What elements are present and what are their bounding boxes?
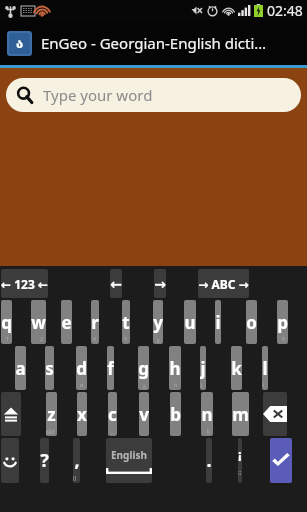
staticText: n bbox=[201, 403, 213, 426]
button[interactable]: n bbox=[201, 392, 213, 436]
button[interactable]: k bbox=[231, 346, 242, 390]
staticText: 4 bbox=[93, 336, 96, 343]
button[interactable]: g bbox=[138, 346, 149, 390]
staticText: f bbox=[107, 357, 114, 380]
button[interactable]: l bbox=[262, 346, 268, 390]
staticText: EnGeo - Georgian-English dicti… bbox=[41, 33, 267, 53]
staticText: j bbox=[200, 357, 206, 380]
button[interactable]: s bbox=[45, 346, 54, 390]
staticText: → ABC → bbox=[198, 276, 249, 292]
button[interactable]: , bbox=[73, 438, 80, 483]
button[interactable]: v bbox=[139, 392, 149, 436]
button[interactable]: q bbox=[1, 300, 12, 344]
button[interactable]: Backspace bbox=[263, 392, 287, 436]
button[interactable]: p bbox=[277, 300, 288, 344]
button[interactable]: Symbols bbox=[238, 438, 242, 483]
button[interactable]: ? bbox=[40, 438, 49, 483]
staticText: ← bbox=[110, 276, 122, 292]
button[interactable]: b bbox=[170, 392, 181, 436]
staticText: ⁝⁝ bbox=[238, 469, 242, 477]
staticText: 02:48 bbox=[267, 1, 303, 20]
staticText: 5 bbox=[124, 336, 127, 343]
staticText: ← 123 ← bbox=[1, 276, 48, 292]
staticText: ჟჰძ bbox=[46, 429, 54, 435]
button[interactable]: m bbox=[232, 392, 249, 436]
staticText: d bbox=[76, 357, 87, 380]
staticText: o bbox=[246, 311, 257, 334]
button[interactable]: e bbox=[61, 300, 72, 344]
staticText: l bbox=[262, 357, 268, 380]
staticText: 1 bbox=[6, 336, 9, 343]
staticText: h bbox=[169, 357, 181, 380]
staticText: → bbox=[154, 276, 166, 292]
button[interactable]: f bbox=[107, 346, 114, 390]
staticText: r bbox=[91, 311, 99, 334]
staticText: j bbox=[201, 382, 203, 389]
button[interactable]: i bbox=[215, 300, 221, 344]
button[interactable]: a bbox=[15, 346, 26, 390]
button[interactable]: Type your word bbox=[6, 78, 301, 112]
staticText: _ bbox=[111, 428, 114, 435]
staticText: . bbox=[206, 448, 212, 473]
staticText: v bbox=[139, 403, 149, 426]
staticText: t bbox=[122, 311, 130, 334]
staticText: k bbox=[231, 357, 242, 380]
button[interactable]: x bbox=[77, 392, 87, 436]
staticText: b bbox=[170, 403, 181, 426]
staticText: ჸ bbox=[157, 337, 160, 343]
staticText: i bbox=[215, 311, 221, 334]
staticText: , bbox=[74, 448, 80, 473]
button[interactable]: y bbox=[153, 300, 163, 344]
staticText: z bbox=[47, 403, 56, 426]
button[interactable]: Shift bbox=[1, 392, 21, 436]
button[interactable]: → ABC → bbox=[198, 269, 249, 298]
button[interactable]: t bbox=[122, 300, 130, 344]
staticText: ? bbox=[40, 448, 49, 473]
button[interactable]: . bbox=[206, 438, 212, 483]
button[interactable]: Enter bbox=[270, 438, 292, 483]
staticText: d bbox=[80, 382, 84, 389]
staticText: e bbox=[61, 311, 72, 334]
staticText: w bbox=[31, 311, 46, 334]
staticText: u bbox=[184, 311, 196, 334]
button[interactable]: j bbox=[200, 346, 206, 390]
staticText: q bbox=[1, 311, 12, 334]
button[interactable]: Move cursor left bbox=[110, 269, 122, 298]
staticText: ნ bbox=[207, 429, 210, 435]
button[interactable]: z bbox=[46, 392, 57, 436]
staticText: x bbox=[77, 403, 87, 426]
button[interactable]: c bbox=[108, 392, 117, 436]
staticText: l bbox=[263, 382, 265, 389]
staticText: h bbox=[174, 382, 178, 389]
staticText: g bbox=[138, 357, 149, 380]
staticText: c bbox=[108, 403, 117, 426]
button[interactable]: o bbox=[246, 300, 257, 344]
staticText: გ bbox=[143, 383, 146, 389]
button[interactable]: u bbox=[184, 300, 196, 344]
button[interactable]: Emoji bbox=[1, 438, 19, 483]
staticText: 2 bbox=[40, 336, 43, 343]
button[interactable]: Move cursor right bbox=[154, 269, 166, 298]
button[interactable]: r bbox=[91, 300, 99, 344]
staticText: ა bbox=[16, 36, 24, 51]
staticText: y bbox=[153, 311, 163, 334]
staticText: 0 bbox=[282, 336, 285, 343]
staticText: ¡ bbox=[238, 445, 242, 463]
button[interactable]: ← 123 ← bbox=[1, 269, 48, 298]
staticText: a bbox=[15, 357, 26, 380]
staticText: m bbox=[232, 403, 249, 426]
button[interactable]: h bbox=[169, 346, 181, 390]
staticText: p bbox=[277, 311, 288, 334]
button[interactable]: d bbox=[76, 346, 87, 390]
staticText: () bbox=[73, 475, 77, 482]
button[interactable]: Space bbox=[106, 438, 152, 483]
staticText: s bbox=[45, 357, 54, 380]
button[interactable]: w bbox=[31, 300, 46, 344]
staticText: Type your word bbox=[43, 85, 153, 105]
staticText: English bbox=[111, 448, 147, 462]
